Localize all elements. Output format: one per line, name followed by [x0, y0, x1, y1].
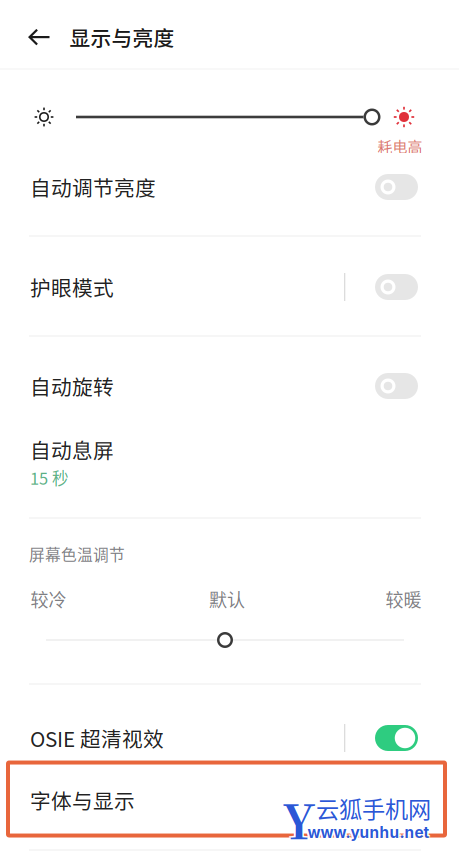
- staticText: 耗电高: [377, 135, 422, 157]
- button[interactable]: 自动调节亮度: [0, 153, 459, 221]
- staticText: 自动旋转: [30, 371, 114, 401]
- staticText: Y: [284, 784, 317, 851]
- staticText: 自动调节亮度: [30, 172, 156, 202]
- staticText: 云狐手机网: [315, 793, 430, 826]
- staticText: www.yunhu.net: [307, 823, 429, 842]
- button[interactable]: 字体与显示: [0, 770, 459, 830]
- staticText: 云狐手机网: [317, 793, 432, 826]
- staticText: 云狐手机网: [316, 791, 431, 825]
- staticText: 护眼模式: [30, 272, 114, 302]
- button[interactable]: Back: [14, 12, 64, 62]
- staticText: 自动息屏: [30, 435, 114, 464]
- staticText: OSIE 超清视效: [30, 723, 164, 753]
- staticText: 云狐手机网: [317, 790, 432, 823]
- button[interactable]: OSIE 超清视效: [0, 709, 459, 767]
- staticText: 15 秒: [30, 465, 69, 489]
- staticText: Y: [284, 787, 317, 854]
- staticText: www.yunhu.net: [309, 825, 431, 843]
- staticText: Y: [281, 784, 314, 851]
- staticText: 默认: [209, 586, 245, 612]
- staticText: Y: [281, 787, 314, 854]
- button[interactable]: 护眼模式: [0, 253, 459, 321]
- staticText: 屏幕色温调节: [29, 543, 125, 565]
- staticText: www.yunhu.net: [306, 822, 428, 840]
- button[interactable]: 自动旋转: [0, 357, 459, 415]
- staticText: 显示与亮度: [69, 22, 174, 52]
- staticText: 较暖: [385, 586, 421, 612]
- staticText: 云狐手机网: [315, 790, 430, 823]
- staticText: www.yunhu.net: [306, 825, 428, 843]
- staticText: www.yunhu.net: [309, 822, 431, 840]
- staticText: 较冷: [30, 586, 66, 612]
- staticText: Y: [282, 785, 315, 853]
- staticText: 字体与显示: [30, 785, 135, 815]
- button[interactable]: 自动息屏: [0, 431, 459, 493]
